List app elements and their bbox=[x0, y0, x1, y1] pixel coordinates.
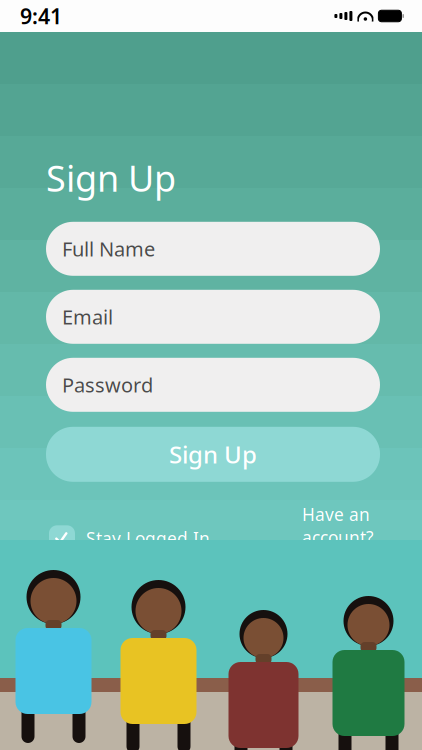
staticText: Sign Up bbox=[46, 154, 176, 202]
staticText: Stay Logged In bbox=[86, 527, 210, 550]
staticText: Password bbox=[62, 371, 153, 398]
staticText: 9:41 bbox=[20, 2, 62, 30]
staticText: Email bbox=[62, 303, 113, 330]
staticText: Have an account? Log In bbox=[302, 503, 374, 572]
staticText: Sign Up bbox=[169, 438, 257, 470]
staticText: Full Name bbox=[62, 235, 155, 262]
button[interactable]: Stay Logged In bbox=[49, 525, 210, 551]
button[interactable]: Have an account? Log In bbox=[302, 503, 394, 574]
button[interactable]: Sign Up bbox=[46, 427, 380, 482]
